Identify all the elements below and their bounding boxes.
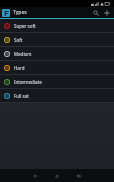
button[interactable]: Intermediate (0, 75, 114, 88)
button[interactable]: Hard (0, 61, 114, 74)
staticText: Full set (14, 93, 29, 99)
staticText: Medium (14, 51, 32, 57)
button[interactable]: App icon, navigate up (2, 9, 10, 17)
staticText: Super soft (14, 23, 36, 29)
staticText: Intermediate (14, 79, 42, 85)
staticText: Types (13, 9, 27, 16)
staticText: Hard (14, 65, 25, 71)
button[interactable]: Soft (0, 33, 114, 46)
button[interactable]: Back (24, 169, 46, 182)
button[interactable]: Medium (0, 47, 114, 60)
staticText: Soft (14, 37, 23, 43)
button[interactable]: Super soft (0, 19, 114, 32)
button[interactable]: Add (101, 7, 112, 18)
button[interactable]: Full set (0, 89, 114, 102)
button[interactable]: Search (90, 7, 101, 18)
button[interactable]: Recent apps (68, 169, 90, 182)
button[interactable]: Home (46, 169, 68, 182)
